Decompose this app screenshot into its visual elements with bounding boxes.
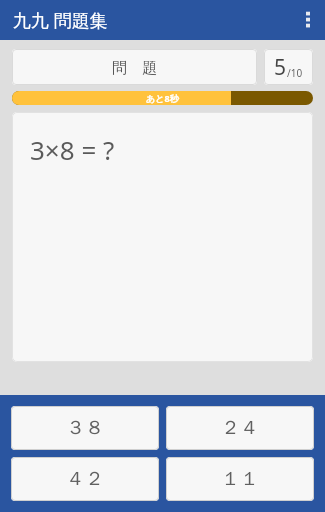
button[interactable]: ３８ [11,406,159,450]
staticText: ３８ [66,416,104,440]
button[interactable]: 問 題 [12,49,257,85]
staticText: /10 [287,66,303,80]
button[interactable]: １１ [166,457,314,501]
button[interactable]: More options [291,0,325,40]
button[interactable]: ２４ [166,406,314,450]
staticText: １１ [221,467,259,491]
staticText: 5 [274,53,287,82]
staticText: ４２ [66,467,104,491]
button[interactable]: ４２ [11,457,159,501]
staticText: あと8秒 [146,92,179,104]
staticText: 3×8 = ? [30,132,115,167]
staticText: ２４ [221,416,259,440]
staticText: 九九 問題集 [13,8,108,33]
staticText: 問 題 [112,57,157,77]
